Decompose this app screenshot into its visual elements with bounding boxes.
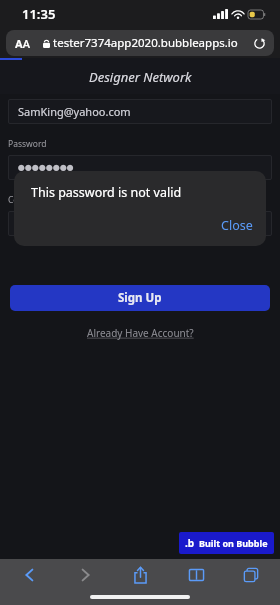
button[interactable]: ●●●●●●●4	[8, 211, 272, 236]
button[interactable]: Tabs	[234, 559, 268, 591]
button[interactable]: SamKing@yahoo.com	[8, 99, 272, 124]
button[interactable]: ●●●●●●●●	[8, 155, 272, 180]
staticText: Confirm Password	[8, 194, 81, 206]
staticText: Designer Network	[89, 68, 192, 86]
button[interactable]: Back	[12, 559, 46, 591]
staticText: 11:35	[22, 5, 56, 23]
button[interactable]: Sign Up	[10, 285, 270, 311]
button[interactable]: Forward	[68, 559, 102, 591]
staticText: Sign Up	[118, 290, 162, 306]
staticText: SamKing@yahoo.com	[18, 104, 131, 119]
staticText: This password is not valid	[31, 184, 182, 201]
staticText: ●●●●●●●●	[18, 163, 74, 172]
staticText: Close	[221, 217, 253, 234]
staticText: tester7374app2020.bubbleapps.io	[53, 35, 238, 51]
button[interactable]: Bookmarks	[179, 559, 213, 591]
button[interactable]: Share	[123, 559, 157, 591]
staticText: 𝐀A	[15, 36, 30, 51]
button[interactable]: .b	[179, 532, 274, 554]
staticText: .b	[185, 536, 195, 550]
button[interactable]: Reload	[253, 37, 266, 50]
staticText: Built on Bubble	[199, 537, 268, 549]
button[interactable]: 𝐀A	[6, 30, 274, 56]
staticText: Password	[8, 138, 47, 150]
button[interactable]: Already Have Account?	[83, 322, 198, 344]
button[interactable]: Close	[207, 215, 266, 236]
